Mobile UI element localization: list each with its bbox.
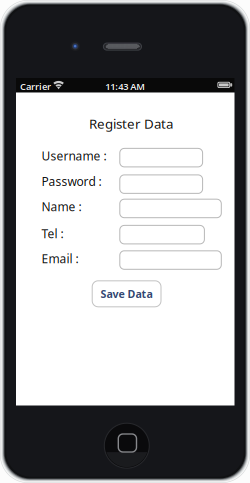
- staticText: Carrier: [20, 80, 51, 93]
- staticText: Name :: [41, 198, 81, 214]
- staticText: Register Data: [89, 115, 173, 132]
- staticText: Email :: [41, 251, 78, 267]
- button[interactable]: Password :: [120, 175, 203, 193]
- staticText: Username :: [41, 148, 106, 164]
- staticText: Tel :: [41, 225, 63, 241]
- staticText: Save Data: [101, 287, 153, 301]
- button[interactable]: Name :: [120, 199, 221, 218]
- button[interactable]: Username :: [120, 148, 203, 167]
- button[interactable]: Email :: [120, 251, 221, 269]
- button[interactable]: Save Data: [92, 281, 161, 307]
- button[interactable]: Home: [104, 423, 149, 468]
- staticText: Password :: [41, 173, 101, 189]
- staticText: 11:43 AM: [105, 80, 145, 93]
- button[interactable]: Tel :: [120, 225, 204, 244]
